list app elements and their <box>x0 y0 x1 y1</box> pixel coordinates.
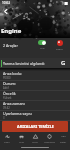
button[interactable]: Uyarlanma sayısı <box>0 111 70 121</box>
staticText: Arıza zamanı <box>3 101 25 106</box>
staticText: Canlı <box>4 140 10 143</box>
staticText: 10:53 <box>2 1 11 5</box>
staticText: Araç <box>19 140 24 143</box>
staticText: Uyarlanma sayısı <box>3 111 32 116</box>
staticText: G <box>61 59 66 67</box>
staticText: P0300 <box>3 76 11 80</box>
button[interactable]: Canlı <box>0 132 14 145</box>
staticText: 2 Araçlar <box>3 43 18 48</box>
button[interactable]: ARIZALARI TEMİZLE <box>2 121 68 132</box>
staticText: Arıza <box>32 140 38 143</box>
button[interactable]: Arıza zamanı <box>0 101 70 111</box>
staticText: Yanma kesintisi algılandı <box>3 61 45 66</box>
button[interactable]: Kapat <box>56 40 63 50</box>
staticText: Durum: <box>3 81 16 86</box>
button[interactable]: Motor açık <box>38 40 46 49</box>
staticText: 3 <box>3 116 5 120</box>
staticText: Yüksek <box>3 96 12 100</box>
staticText: Açık <box>40 46 45 49</box>
button[interactable]: Arıza kodu: <box>0 71 70 81</box>
staticText: Kapat <box>56 47 63 50</box>
staticText: Engine <box>1 27 22 35</box>
staticText: Aktif <box>3 86 9 90</box>
staticText: 09:42 <box>3 106 10 110</box>
staticText: Diğer <box>60 140 67 143</box>
button[interactable]: Back <box>1 7 10 16</box>
button[interactable]: Uyarlama <box>42 132 56 145</box>
button[interactable]: Araç <box>14 132 28 145</box>
staticText: Arıza kodu: <box>3 71 22 76</box>
button[interactable]: Yanma kesintisi algılandı <box>0 58 70 68</box>
button[interactable]: Diğer <box>56 132 70 145</box>
staticText: ARIZALARI TEMİZLE <box>17 124 54 129</box>
staticText: Öncelik <box>3 91 16 96</box>
button[interactable]: Öncelik <box>0 91 70 101</box>
staticText: Uyarlama <box>44 140 55 143</box>
button[interactable]: Arıza <box>28 132 42 145</box>
button[interactable]: Durum: <box>0 81 70 91</box>
